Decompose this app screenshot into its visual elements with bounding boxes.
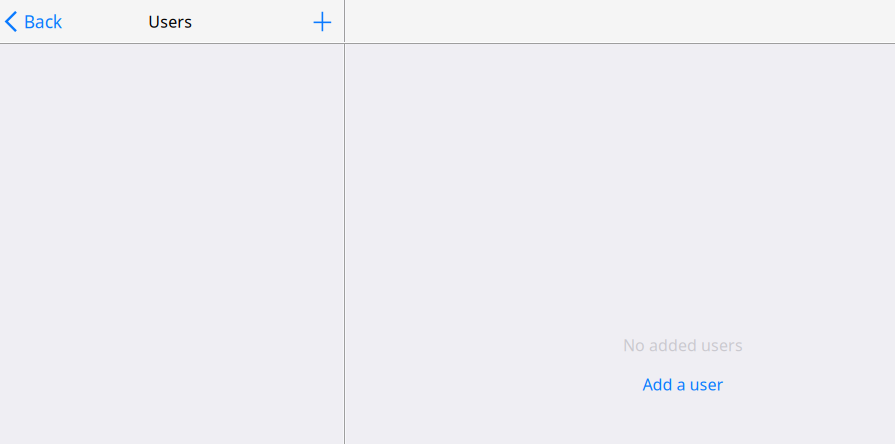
button[interactable]: Add a user	[638, 370, 727, 399]
staticText: Add a user	[642, 374, 723, 395]
staticText: No added users	[623, 334, 743, 356]
staticText: Users	[148, 11, 192, 32]
staticText: Back	[24, 10, 62, 33]
button[interactable]: Add user	[300, 0, 344, 43]
button[interactable]: Back	[0, 0, 96, 43]
